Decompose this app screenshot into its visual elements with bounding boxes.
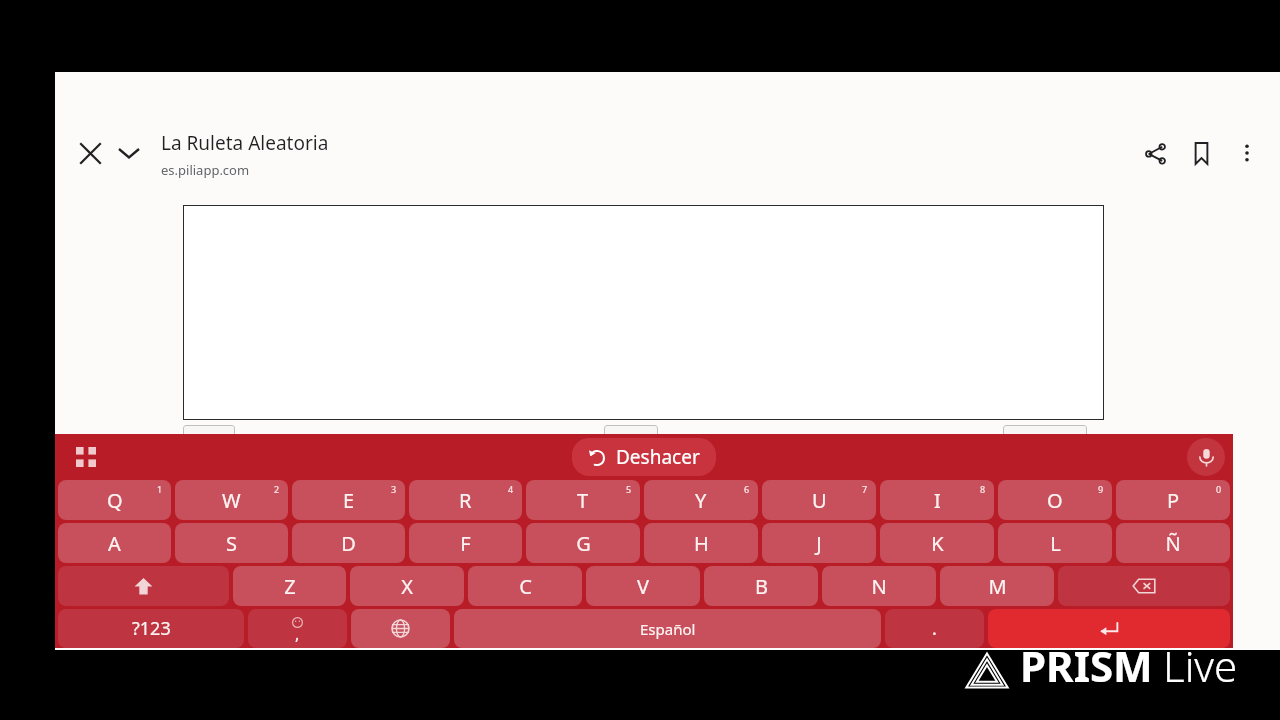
button[interactable]: Editar (604, 425, 658, 449)
staticText: S (226, 530, 237, 557)
staticText: . (932, 616, 937, 641)
staticText: T (577, 487, 589, 514)
staticText: C (519, 573, 532, 600)
button[interactable]: Voice input (1187, 438, 1225, 476)
staticText: J (816, 530, 822, 557)
staticText: , (295, 623, 300, 645)
button[interactable]: A (58, 523, 171, 563)
button[interactable]: N (822, 566, 936, 606)
button[interactable]: B (704, 566, 818, 606)
staticText: W (222, 487, 241, 514)
button[interactable]: Bookmark (1178, 130, 1224, 176)
staticText: Editar (616, 430, 647, 445)
staticText: L (1050, 530, 1061, 557)
staticText: X (401, 573, 413, 600)
button[interactable]: Comma (248, 609, 347, 648)
button[interactable]: Enter (988, 609, 1230, 648)
button[interactable]: F (409, 523, 522, 563)
button[interactable]: Backspace (1058, 566, 1230, 606)
button[interactable]: Change language (351, 609, 450, 648)
button[interactable]: Keyboard modes (63, 434, 109, 480)
button[interactable]: K (880, 523, 994, 563)
button[interactable]: Título (183, 425, 235, 449)
staticText: La Ruleta Aleatoria (161, 130, 329, 156)
staticText: F (460, 530, 471, 557)
button[interactable]: J (762, 523, 876, 563)
button[interactable]: H (644, 523, 758, 563)
button[interactable]: Ñ (1116, 523, 1230, 563)
button[interactable]: V (586, 566, 700, 606)
button[interactable]: Deshacer (572, 438, 716, 476)
staticText: K (931, 530, 944, 557)
button[interactable]: I (880, 480, 994, 520)
button[interactable] (183, 205, 1104, 420)
button[interactable]: Q (58, 480, 171, 520)
staticText: Live (1163, 637, 1238, 694)
staticText: U (812, 487, 827, 514)
staticText: Ñ (1165, 530, 1181, 557)
staticText: O (1047, 487, 1063, 514)
button[interactable]: Close (67, 130, 113, 176)
button[interactable]: C (468, 566, 582, 606)
staticText: A (108, 530, 121, 557)
staticText: M (988, 573, 1007, 600)
staticText: 8 (980, 483, 986, 495)
button[interactable]: S (175, 523, 288, 563)
staticText: P (1167, 487, 1180, 514)
staticText: R (459, 487, 472, 514)
staticText: E (343, 487, 355, 514)
button[interactable]: M (940, 566, 1054, 606)
staticText: G (576, 530, 591, 557)
staticText: ?123 (132, 616, 171, 641)
button[interactable]: ?123 (58, 609, 244, 648)
button[interactable]: D (292, 523, 405, 563)
button[interactable]: L (998, 523, 1112, 563)
staticText: 5 (626, 483, 632, 495)
button[interactable]: P (1116, 480, 1230, 520)
staticText: B (755, 573, 768, 600)
staticText: Título (194, 430, 224, 445)
button[interactable]: Period (885, 609, 984, 648)
staticText: 1 (157, 483, 163, 495)
button[interactable]: T (526, 480, 640, 520)
button[interactable]: Share (1132, 130, 1178, 176)
staticText: Q (107, 487, 123, 514)
staticText: esconder... (1018, 430, 1073, 445)
staticText: H (694, 530, 709, 557)
button[interactable]: Expand (106, 130, 152, 176)
button[interactable]: Z (233, 566, 346, 606)
staticText: es.piliapp.com (161, 161, 250, 179)
button[interactable]: More options (1224, 130, 1270, 176)
button[interactable]: Shift (58, 566, 229, 606)
button[interactable]: U (762, 480, 876, 520)
staticText: 0 (1216, 483, 1222, 495)
button[interactable]: W (175, 480, 288, 520)
staticText: PRISM (1020, 637, 1153, 694)
staticText: Español (640, 619, 696, 639)
staticText: 4 (508, 483, 514, 495)
staticText: Y (695, 487, 707, 514)
staticText: 7 (862, 483, 868, 495)
button[interactable]: Y (644, 480, 758, 520)
button[interactable]: O (998, 480, 1112, 520)
staticText: Z (284, 573, 296, 600)
staticText: N (871, 573, 887, 600)
button[interactable]: esconder... (1003, 425, 1087, 449)
button[interactable]: Español (454, 609, 881, 648)
staticText: Deshacer (616, 444, 700, 470)
staticText: D (341, 530, 356, 557)
staticText: 3 (391, 483, 397, 495)
staticText: 6 (744, 483, 750, 495)
staticText: 2 (274, 483, 280, 495)
button[interactable]: G (526, 523, 640, 563)
staticText: 9 (1098, 483, 1104, 495)
staticText: V (637, 573, 649, 600)
button[interactable]: X (350, 566, 464, 606)
button[interactable]: R (409, 480, 522, 520)
button[interactable]: E (292, 480, 405, 520)
staticText: I (934, 487, 941, 514)
